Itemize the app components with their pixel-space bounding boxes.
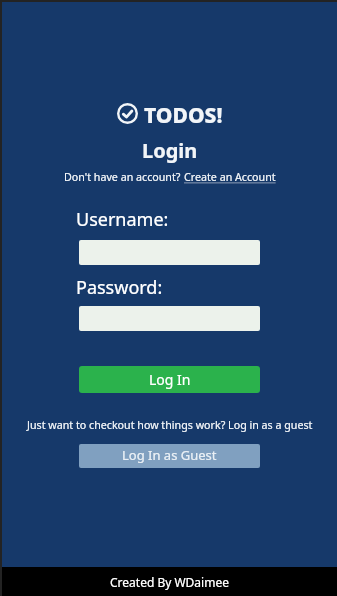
staticText: Login bbox=[142, 137, 198, 164]
staticText: Username: bbox=[76, 207, 169, 232]
button[interactable] bbox=[79, 240, 260, 265]
staticText: Log In bbox=[149, 370, 191, 389]
button[interactable]: Log In bbox=[79, 366, 260, 393]
staticText: Just want to checkout how things work? L… bbox=[27, 418, 313, 433]
staticText: Log In as Guest bbox=[122, 446, 217, 464]
button[interactable]: Create an Account bbox=[184, 170, 276, 185]
staticText: Password: bbox=[76, 275, 163, 300]
staticText: TODOS! bbox=[144, 101, 223, 130]
staticText: Don't have an account? bbox=[64, 170, 184, 185]
staticText: Created By WDaimee bbox=[110, 574, 229, 590]
button[interactable] bbox=[79, 306, 260, 331]
button[interactable]: Log In as Guest bbox=[79, 444, 260, 468]
